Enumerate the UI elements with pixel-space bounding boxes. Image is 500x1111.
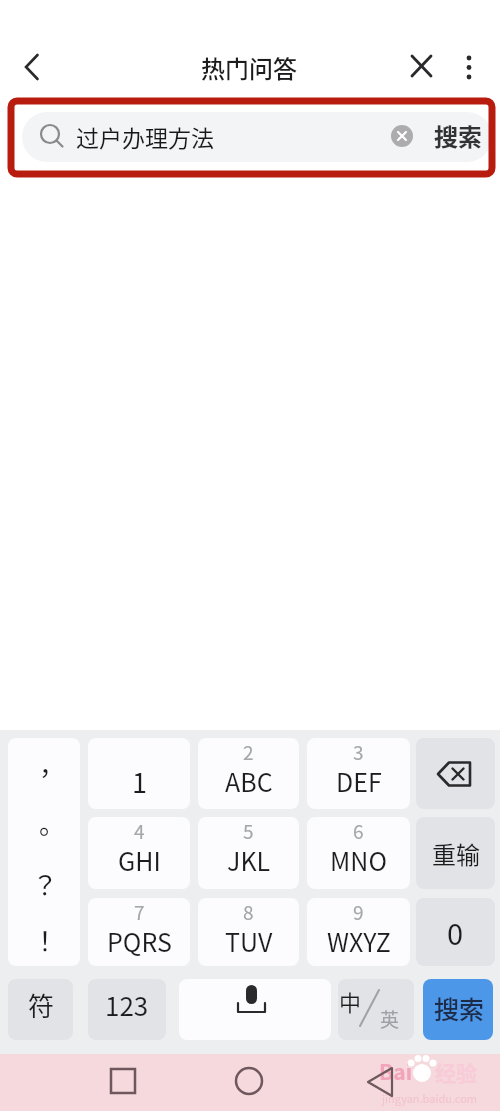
staticText: ， bbox=[39, 745, 66, 781]
staticText: GHI bbox=[118, 842, 161, 878]
staticText: 8 bbox=[243, 898, 254, 924]
staticText: 5 bbox=[243, 817, 254, 843]
staticText: TUV bbox=[225, 923, 273, 959]
staticText: JKL bbox=[227, 842, 271, 878]
staticText: ？ bbox=[32, 865, 59, 901]
staticText: 4 bbox=[134, 817, 145, 843]
staticText: 中 bbox=[339, 985, 362, 1017]
staticText: ！ bbox=[32, 921, 59, 957]
staticText: jingyan.baidu.com bbox=[382, 1090, 478, 1106]
staticText: 热门问答 bbox=[201, 50, 297, 85]
staticText: MNO bbox=[330, 842, 387, 878]
staticText: 0 bbox=[447, 911, 464, 953]
staticText: Bai bbox=[379, 1056, 413, 1086]
staticText: 搜索 bbox=[434, 118, 482, 153]
staticText: 重输 bbox=[432, 836, 480, 871]
staticText: 搜索 bbox=[434, 990, 485, 1026]
staticText: ABC bbox=[225, 763, 273, 799]
staticText: 9 bbox=[353, 898, 364, 924]
staticText: 6 bbox=[353, 817, 364, 843]
staticText: 过户办理方法 bbox=[76, 120, 214, 153]
staticText: 2 bbox=[243, 738, 254, 764]
staticText: 经验 bbox=[435, 1057, 477, 1087]
staticText: 。 bbox=[39, 804, 66, 840]
staticText: 3 bbox=[353, 738, 364, 764]
staticText: 123 bbox=[105, 986, 149, 1024]
staticText: 符 bbox=[28, 986, 55, 1024]
staticText: DEF bbox=[336, 763, 382, 799]
staticText: PQRS bbox=[107, 923, 172, 959]
staticText: 英 bbox=[380, 1005, 400, 1033]
staticText: 7 bbox=[134, 898, 145, 924]
staticText: WXYZ bbox=[327, 923, 391, 959]
staticText: 1 bbox=[132, 762, 147, 799]
